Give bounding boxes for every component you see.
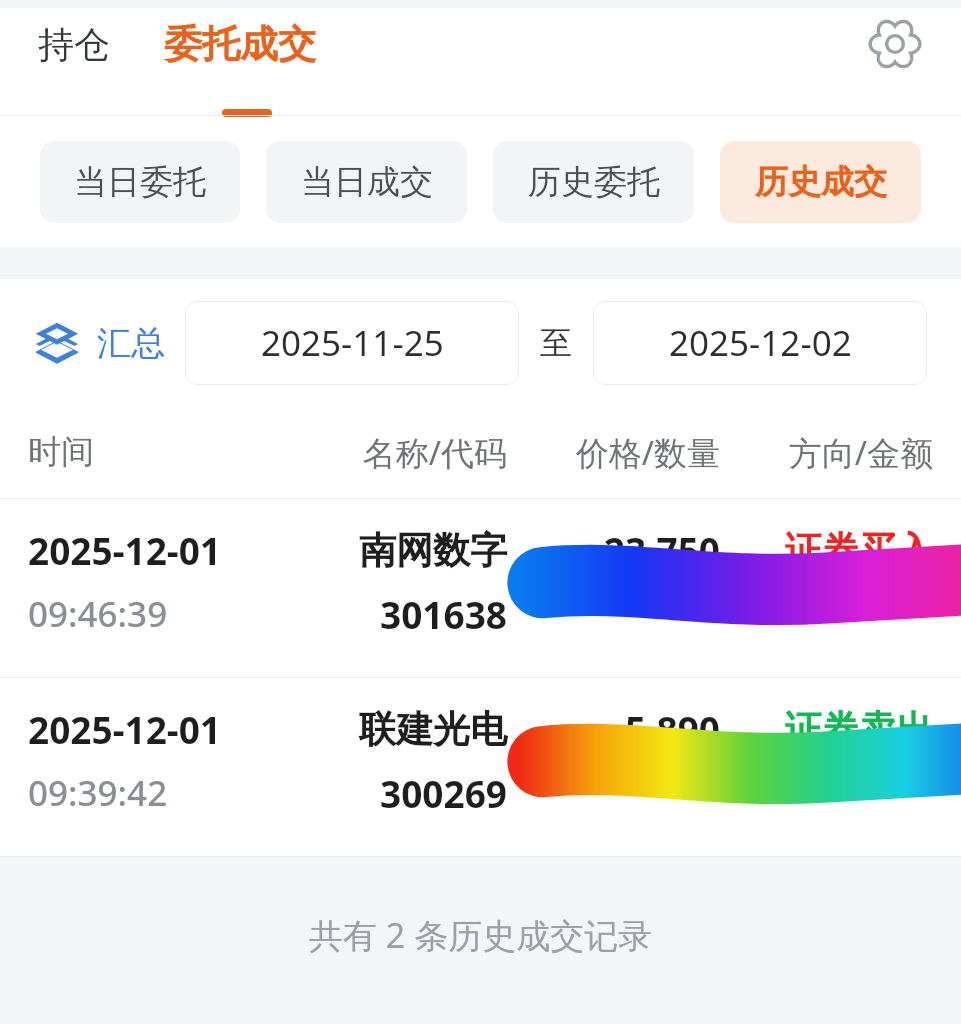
button[interactable]: 持仓 [34,12,114,77]
staticText: 时间 [28,431,273,473]
button[interactable]: 2025-12-01 [0,499,961,677]
staticText: 历史委托 [528,161,660,203]
staticText: 历史成交 [755,161,887,203]
button[interactable]: 2025-11-25 [185,301,519,385]
staticText: 汇总 [97,322,165,365]
staticText: 共有 2 条历史成交记录 [309,912,653,958]
button[interactable]: Settings [859,8,931,80]
staticText: 持仓 [38,22,110,67]
staticText: 301638 [273,589,507,639]
staticText: 300269 [273,768,507,818]
button[interactable]: 历史委托 [493,141,694,223]
staticText: 当日成交 [301,161,433,203]
staticText: 委托成交 [164,20,316,68]
staticText: 南网数字 [273,527,507,574]
staticText: 2025-12-01 [28,704,273,754]
button[interactable]: 委托成交 [160,10,320,78]
staticText: 名称/代码 [273,430,507,475]
staticText: 2025-11-25 [261,319,444,367]
staticText: 当日委托 [74,161,206,203]
button[interactable]: 当日成交 [266,141,467,223]
staticText: 2025-12-02 [669,319,852,367]
staticText: 23.750 [507,525,720,575]
button[interactable]: 汇总 [34,312,165,374]
staticText: 至 [540,323,572,363]
button[interactable]: 2025-12-01 [0,678,961,856]
button[interactable]: 当日委托 [40,141,240,223]
staticText: 联建光电 [273,706,507,753]
staticText: 证券卖出 [720,706,933,753]
staticText: 5.890 [507,704,720,754]
button[interactable]: 历史成交 [720,141,921,223]
button[interactable]: 2025-12-02 [593,301,927,385]
staticText: 证券买入 [720,527,933,574]
staticText: 2025-12-01 [28,525,273,575]
staticText: 09:46:39 [28,590,273,638]
staticText: 09:39:42 [28,769,273,817]
staticText: 方向/金额 [720,430,933,475]
staticText: 价格/数量 [507,430,720,475]
